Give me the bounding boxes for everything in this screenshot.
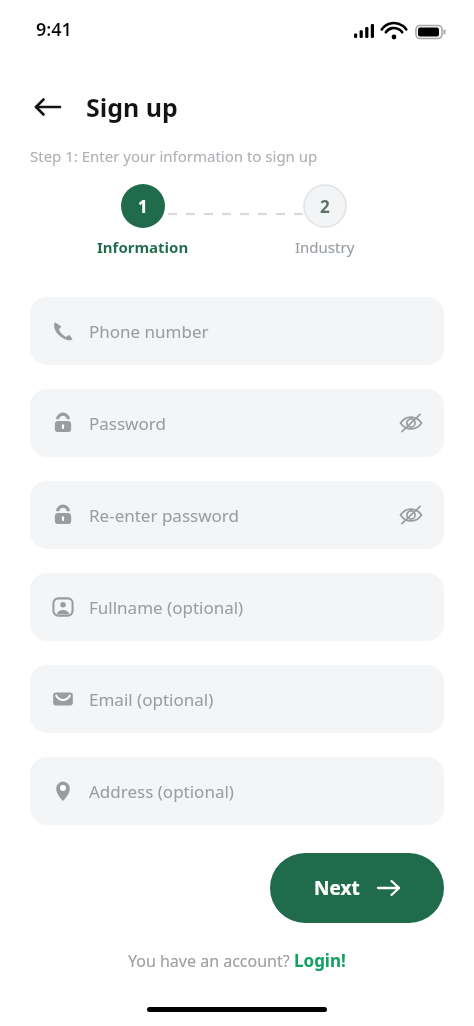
staticText: 2	[320, 195, 330, 218]
staticText: Re-enter password	[89, 504, 396, 527]
button[interactable]: Show password	[396, 500, 426, 530]
button[interactable]: Password	[30, 389, 444, 457]
staticText: 9:41	[36, 17, 72, 42]
staticText: You have an account?	[128, 950, 294, 972]
staticText: Step 1: Enter your information to sign u…	[30, 146, 318, 166]
staticText: Industry	[295, 237, 355, 257]
staticText: Sign up	[86, 90, 178, 124]
button[interactable]: Address (optional)	[30, 757, 444, 825]
button[interactable]: Re-enter password	[30, 481, 444, 549]
button[interactable]: Next	[270, 853, 444, 923]
button[interactable]: Show password	[396, 408, 426, 438]
button[interactable]: Email (optional)	[30, 665, 444, 733]
button[interactable]: Fullname (optional)	[30, 573, 444, 641]
staticText: Address (optional)	[89, 780, 426, 803]
button[interactable]: 2	[303, 184, 347, 228]
button[interactable]: Login!	[294, 949, 346, 972]
button[interactable]: 1	[121, 184, 165, 228]
staticText: Next	[314, 875, 360, 901]
staticText: Information	[97, 237, 189, 257]
staticText: Email (optional)	[89, 688, 426, 711]
staticText: Password	[89, 412, 396, 435]
staticText: Login!	[294, 949, 346, 972]
staticText: Phone number	[89, 320, 426, 343]
button[interactable]: Phone number	[30, 297, 444, 365]
staticText: 1	[138, 195, 148, 218]
staticText: Fullname (optional)	[89, 596, 426, 619]
button[interactable]: Back	[26, 85, 70, 129]
